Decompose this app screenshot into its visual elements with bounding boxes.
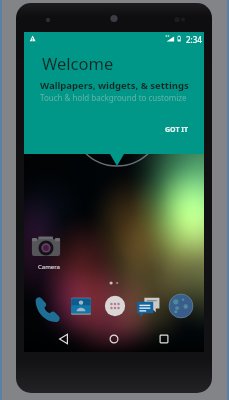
- button[interactable]: Home: [98, 328, 130, 350]
- button[interactable]: Browser: [168, 293, 194, 319]
- button[interactable]: Contacts: [68, 293, 94, 319]
- button[interactable]: All apps: [102, 293, 128, 319]
- button[interactable]: Back: [48, 328, 80, 350]
- button[interactable]: Messaging: [135, 293, 161, 319]
- staticText: Welcome: [42, 52, 114, 74]
- button[interactable]: Recents: [148, 328, 180, 350]
- staticText: Camera: [38, 263, 60, 271]
- staticText: GOT IT: [165, 125, 189, 135]
- button[interactable]: GOT IT: [160, 121, 193, 137]
- staticText: Wallpapers, widgets, & settings: [40, 79, 189, 92]
- button[interactable]: Phone: [33, 293, 59, 319]
- staticText: 2:34: [186, 34, 202, 45]
- staticText: Touch & hold background to customize: [40, 92, 187, 103]
- button[interactable]: Camera: [30, 231, 62, 263]
